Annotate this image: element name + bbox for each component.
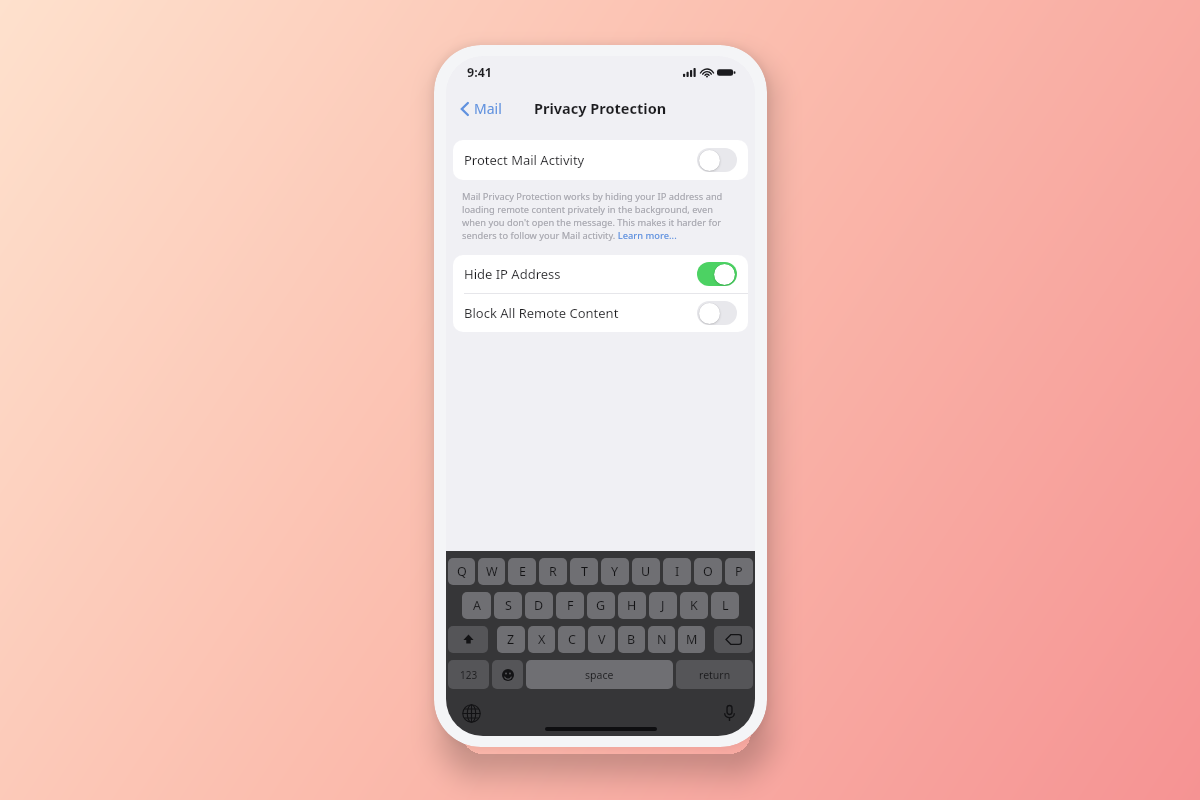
button[interactable]: Shift [448, 626, 488, 653]
button[interactable]: G [587, 592, 615, 619]
button[interactable]: X [528, 626, 555, 653]
staticText: E [519, 563, 526, 580]
staticText: U [641, 563, 651, 580]
button[interactable]: Off [697, 148, 737, 172]
button[interactable]: U [632, 558, 660, 585]
button[interactable]: Hide IP Address [453, 255, 748, 293]
staticText: Hide IP Address [464, 265, 561, 283]
button[interactable]: return [676, 660, 753, 689]
staticText: I [675, 563, 680, 580]
button[interactable]: Z [497, 626, 525, 653]
button[interactable]: M [678, 626, 705, 653]
button[interactable]: O [694, 558, 722, 585]
button[interactable]: K [680, 592, 708, 619]
staticText: C [568, 631, 576, 648]
button[interactable]: B [618, 626, 645, 653]
button[interactable]: W [478, 558, 505, 585]
staticText: J [661, 597, 665, 614]
button[interactable]: E [508, 558, 536, 585]
staticText: M [686, 631, 698, 648]
staticText: Q [457, 563, 467, 580]
button[interactable]: P [725, 558, 753, 585]
button[interactable]: Y [601, 558, 629, 585]
button[interactable]: S [494, 592, 522, 619]
button[interactable]: A [462, 592, 491, 619]
button[interactable]: Mail [457, 94, 506, 123]
button[interactable]: Protect Mail Activity [453, 140, 748, 180]
staticText: return [699, 668, 731, 682]
button[interactable]: 123 [448, 660, 489, 689]
button[interactable]: T [570, 558, 598, 585]
staticText: Protect Mail Activity [464, 151, 585, 169]
button[interactable]: Off [697, 301, 737, 325]
button[interactable]: Block All Remote Content [453, 294, 748, 332]
staticText: Mail [474, 99, 502, 118]
staticText: O [703, 563, 713, 580]
button[interactable]: I [663, 558, 691, 585]
staticText: S [505, 597, 512, 614]
button[interactable]: H [618, 592, 646, 619]
button[interactable]: L [711, 592, 739, 619]
staticText: Privacy Protection [534, 98, 667, 118]
staticText: N [657, 631, 667, 648]
staticText: B [627, 631, 636, 648]
button[interactable]: Dictation [717, 701, 742, 726]
staticText: T [581, 563, 588, 580]
staticText: G [596, 597, 606, 614]
button[interactable]: D [525, 592, 553, 619]
button[interactable]: On [697, 262, 737, 286]
button[interactable]: N [648, 626, 675, 653]
staticText: Z [507, 631, 515, 648]
staticText: K [690, 597, 698, 614]
button[interactable]: F [556, 592, 584, 619]
staticText: X [538, 631, 546, 648]
staticText: 9:41 [467, 64, 492, 81]
button[interactable]: Emoji [492, 660, 523, 689]
staticText: 123 [460, 668, 478, 682]
button[interactable]: C [558, 626, 585, 653]
staticText: D [534, 597, 544, 614]
staticText: L [722, 597, 729, 614]
staticText: space [585, 668, 614, 682]
button[interactable]: Q [448, 558, 475, 585]
staticText: A [473, 597, 481, 614]
staticText: V [598, 631, 606, 648]
button[interactable]: Delete [714, 626, 753, 653]
button[interactable]: space [526, 660, 673, 689]
staticText: H [627, 597, 637, 614]
staticText: F [567, 597, 574, 614]
staticText: W [486, 563, 498, 580]
staticText: Mail Privacy Protection works by hiding … [462, 190, 739, 242]
staticText: Block All Remote Content [464, 304, 619, 322]
staticText: P [735, 563, 743, 580]
button[interactable]: J [649, 592, 677, 619]
button[interactable]: V [588, 626, 615, 653]
button[interactable]: Change keyboard [459, 701, 484, 726]
button[interactable]: R [539, 558, 567, 585]
staticText: R [549, 563, 557, 580]
staticText: Y [611, 563, 619, 580]
